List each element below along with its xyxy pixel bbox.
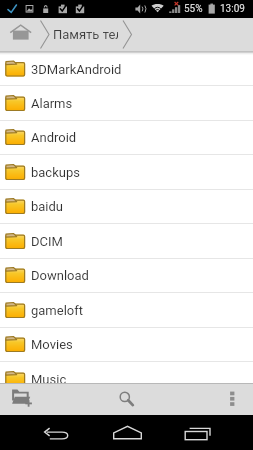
button[interactable]: backups	[0, 155, 253, 190]
button[interactable]: Notifications	[0, 396, 253, 431]
button[interactable]: gameloft	[0, 293, 253, 328]
button[interactable]: More options	[221, 384, 253, 415]
button[interactable]: Память тел	[53, 18, 118, 51]
staticText: backups	[31, 165, 80, 180]
staticText: 55%	[184, 3, 203, 15]
button[interactable]: baidu	[0, 189, 253, 224]
button[interactable]: Back	[0, 415, 84, 450]
staticText: Movies	[31, 337, 73, 352]
staticText: Music	[31, 372, 67, 387]
staticText: 3DMarkAndroid	[31, 62, 122, 77]
button[interactable]: Recent apps	[169, 415, 253, 450]
button[interactable]: Movies	[0, 327, 253, 362]
staticText: Download	[31, 268, 89, 283]
button[interactable]: New folder	[0, 384, 44, 415]
staticText: gameloft	[31, 303, 84, 318]
button[interactable]: Music	[0, 362, 253, 397]
button[interactable]: Search	[104, 384, 146, 415]
button[interactable]: Alarms	[0, 86, 253, 121]
button[interactable]: Home	[84, 415, 169, 450]
staticText: Alarms	[31, 96, 73, 111]
button[interactable]: 3DMarkAndroid	[0, 52, 253, 86]
staticText: baidu	[31, 199, 64, 214]
button[interactable]: DCIM	[0, 224, 253, 259]
staticText: Память тел	[53, 27, 118, 42]
staticText: DCIM	[31, 234, 63, 249]
button[interactable]: Android	[0, 120, 253, 155]
staticText: Android	[31, 130, 77, 145]
staticText: 13:09	[220, 3, 245, 15]
staticText: Notifications	[31, 406, 105, 421]
button[interactable]: Home folder	[0, 18, 41, 51]
button[interactable]: Download	[0, 258, 253, 293]
